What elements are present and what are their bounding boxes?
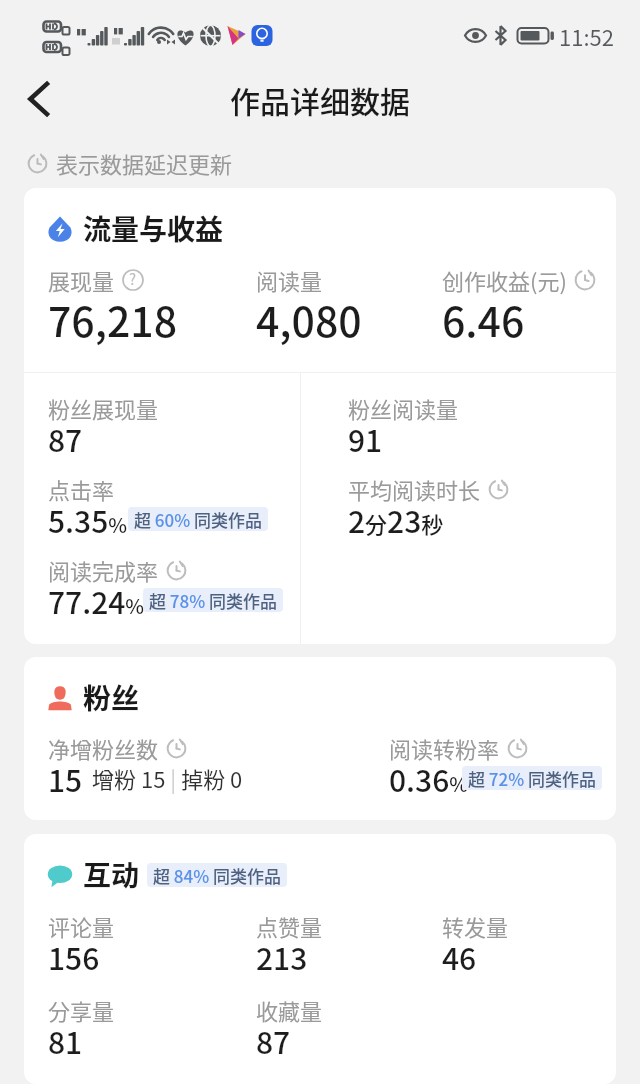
staticText: 6.46 <box>442 289 525 348</box>
staticText: 粉丝展现量 <box>48 392 159 424</box>
staticText: 阅读量 <box>256 264 323 296</box>
staticText: 46 <box>442 935 477 978</box>
staticText: 流量与收益 <box>83 208 224 249</box>
staticText: 213 <box>256 935 308 978</box>
staticText: 分享量 <box>48 994 115 1026</box>
staticText: 超 78% 同类作品 <box>149 588 277 612</box>
staticText: 91 <box>348 417 383 460</box>
staticText: 超 72% 同类作品 <box>468 766 596 790</box>
staticText: 阅读转粉率 <box>389 732 500 764</box>
staticText: 点赞量 <box>256 910 323 942</box>
staticText: 点击率 <box>48 473 115 505</box>
staticText: 互动 <box>83 854 140 895</box>
staticText: 2分23秒 <box>348 498 444 541</box>
staticText: 创作收益(元) <box>442 264 567 296</box>
staticText: 77.24% <box>48 579 145 622</box>
staticText: 81 <box>48 1019 83 1062</box>
staticText: 76,218 <box>48 289 178 348</box>
button[interactable]: Back <box>8 68 70 130</box>
staticText: 87 <box>48 417 83 460</box>
staticText: 4,080 <box>256 289 362 348</box>
staticText: 阅读完成率 <box>48 554 159 586</box>
staticText: 0.36% <box>389 757 469 800</box>
staticText: 粉丝阅读量 <box>348 392 459 424</box>
staticText: ? <box>129 268 137 290</box>
staticText: 增粉 15 | 掉粉 0 <box>92 762 243 794</box>
staticText: 15 <box>48 757 83 800</box>
staticText: 评论量 <box>48 910 115 942</box>
staticText: 转发量 <box>442 910 509 942</box>
staticText: 156 <box>48 935 100 978</box>
staticText: 展现量 <box>48 264 115 296</box>
staticText: 超 84% 同类作品 <box>153 863 281 887</box>
staticText: 平均阅读时长 <box>348 473 481 505</box>
staticText: 超 60% 同类作品 <box>134 507 262 531</box>
staticText: 表示数据延迟更新 <box>56 147 233 179</box>
staticText: 11:52 <box>559 20 614 52</box>
staticText: 5.35% <box>48 498 128 541</box>
staticText: 87 <box>256 1019 291 1062</box>
staticText: 作品详细数据 <box>230 78 410 121</box>
staticText: 粉丝 <box>83 677 140 718</box>
staticText: 收藏量 <box>256 994 323 1026</box>
staticText: 净增粉丝数 <box>48 732 159 764</box>
